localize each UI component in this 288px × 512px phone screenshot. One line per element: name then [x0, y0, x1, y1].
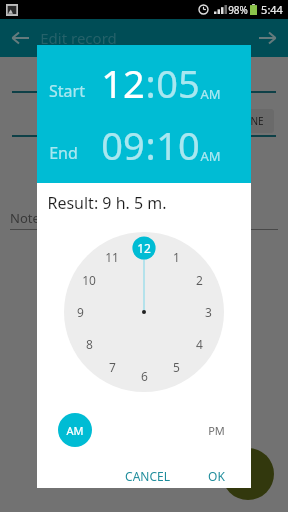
- staticText: 2: [196, 272, 203, 288]
- staticText: :: [145, 119, 156, 171]
- button[interactable]: 8: [78, 333, 100, 355]
- button[interactable]: Add: [222, 448, 274, 500]
- staticText: AM: [200, 147, 221, 165]
- button[interactable]: 4: [188, 333, 210, 355]
- staticText: AM: [200, 85, 221, 103]
- button[interactable]: Forward: [258, 28, 278, 48]
- button[interactable]: 1: [165, 246, 187, 268]
- staticText: 05: [156, 57, 200, 109]
- staticText: OK: [208, 468, 225, 482]
- button[interactable]: 2: [188, 269, 210, 291]
- staticText: 4: [196, 336, 203, 352]
- staticText: Note: [10, 209, 40, 227]
- staticText: AM: [66, 423, 84, 438]
- staticText: Result: 9 h. 5 m.: [47, 192, 167, 214]
- button[interactable]: 10: [78, 269, 100, 291]
- button[interactable]: Back: [10, 28, 30, 48]
- staticText: 98%: [228, 3, 248, 17]
- staticText: 10: [156, 119, 200, 171]
- staticText: DONE: [235, 114, 264, 128]
- button[interactable]: Start: [37, 57, 251, 109]
- staticText: Start: [49, 80, 85, 102]
- button[interactable]: 11: [101, 246, 123, 268]
- staticText: PM: [208, 423, 225, 438]
- staticText: End: [49, 142, 78, 164]
- staticText: 09: [101, 119, 145, 171]
- staticText: 11: [105, 249, 119, 265]
- button[interactable]: 9: [69, 301, 91, 323]
- staticText: 3: [205, 304, 212, 320]
- staticText: CANCEL: [125, 468, 170, 482]
- staticText: :: [145, 57, 156, 109]
- staticText: 9: [77, 304, 84, 320]
- button[interactable]: OK: [200, 462, 233, 488]
- staticText: 5:44: [261, 2, 283, 17]
- staticText: Edit record: [40, 28, 117, 48]
- staticText: 8: [86, 336, 93, 352]
- button[interactable]: 3: [197, 301, 219, 323]
- button[interactable]: 12: [133, 237, 155, 259]
- button[interactable]: 6: [133, 365, 155, 387]
- button[interactable]: PM: [200, 415, 233, 446]
- button[interactable]: CANCEL: [117, 462, 178, 488]
- staticText: 10: [82, 272, 96, 288]
- button[interactable]: End: [37, 119, 251, 171]
- button[interactable]: AM: [58, 413, 92, 447]
- button[interactable]: 5: [165, 356, 187, 378]
- staticText: 12: [101, 57, 145, 109]
- staticText: 5: [173, 359, 180, 375]
- button[interactable]: DONE: [225, 109, 274, 133]
- staticText: 12: [137, 240, 151, 256]
- button[interactable]: 7: [101, 356, 123, 378]
- staticText: 1: [173, 249, 180, 265]
- staticText: 7: [109, 359, 116, 375]
- staticText: 6: [141, 368, 148, 384]
